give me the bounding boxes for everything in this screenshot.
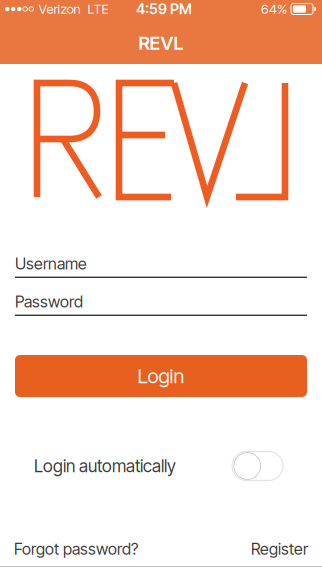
staticText: Password (15, 292, 83, 311)
staticText: Forgot password? (14, 539, 138, 559)
staticText: Login automatically (34, 455, 176, 476)
button[interactable]: Login (15, 355, 307, 397)
staticText: 64% (261, 1, 287, 17)
button[interactable]: Login automatically (232, 451, 283, 480)
staticText: Verizon (38, 1, 80, 17)
staticText: Username (15, 254, 87, 273)
staticText: REVL (138, 32, 183, 54)
staticText: LTE (87, 1, 108, 17)
staticText: 4:59 PM (136, 0, 192, 18)
button[interactable]: Register (251, 539, 308, 559)
staticText: Register (251, 539, 308, 559)
button[interactable]: Forgot password? (14, 539, 138, 559)
staticText: Login (137, 364, 184, 388)
